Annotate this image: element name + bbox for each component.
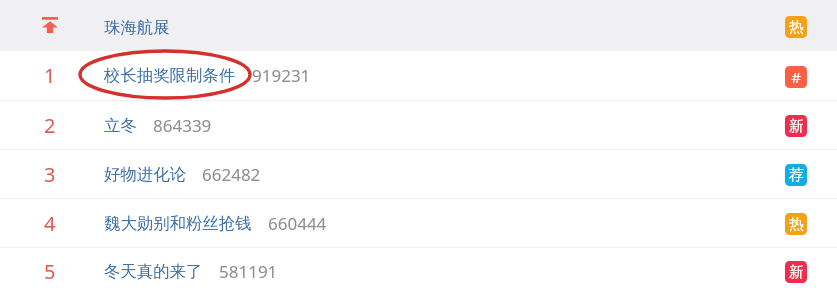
staticText: 919231 (252, 64, 311, 87)
button[interactable]: 热 (785, 213, 807, 235)
staticText: 新 (789, 117, 804, 136)
staticText: 好物进化论 (104, 164, 186, 185)
button[interactable]: 4 (0, 199, 837, 247)
button[interactable]: 新 (785, 115, 807, 137)
staticText: 1 (44, 62, 56, 89)
staticText: 581191 (219, 260, 278, 283)
button[interactable]: 新 (785, 261, 807, 283)
button[interactable]: Pinned to top (0, 0, 837, 50)
staticText: 2 (44, 112, 56, 139)
staticText: 4 (44, 210, 56, 237)
staticText: 热 (789, 18, 804, 37)
staticText: 3 (44, 161, 56, 188)
staticText: 660444 (268, 212, 327, 235)
staticText: 校长抽奖限制条件 (104, 65, 236, 86)
staticText: 珠海航展 (104, 17, 170, 38)
staticText: 新 (789, 263, 804, 282)
other: Pinned to top (42, 17, 58, 33)
button[interactable]: 1 (0, 51, 837, 100)
button[interactable]: # (785, 66, 807, 88)
staticText: 662482 (202, 163, 261, 186)
button[interactable]: 热 (785, 16, 807, 38)
staticText: 荐 (789, 166, 804, 185)
button[interactable]: 3 (0, 150, 837, 198)
staticText: 5 (44, 258, 56, 285)
button[interactable]: 2 (0, 101, 837, 149)
staticText: 864339 (153, 114, 212, 137)
staticText: # (791, 67, 801, 87)
button[interactable]: 5 (0, 248, 837, 294)
staticText: 冬天真的来了 (104, 261, 203, 282)
button[interactable]: 荐 (785, 164, 807, 186)
staticText: 立冬 (104, 115, 137, 136)
staticText: 魏大勋别和粉丝抢钱 (104, 213, 252, 234)
staticText: 热 (789, 215, 804, 234)
